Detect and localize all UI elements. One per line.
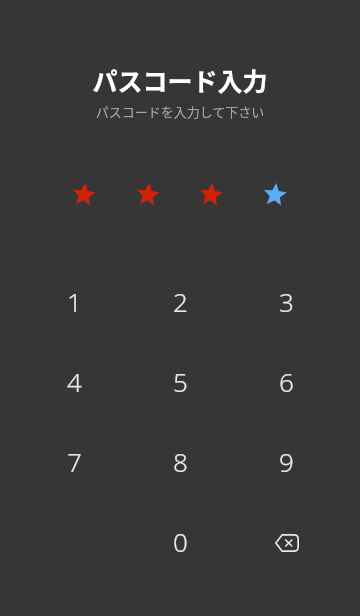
button[interactable]: 4 [21, 341, 127, 421]
button[interactable]: 2 [127, 261, 233, 341]
staticText: 2 [173, 284, 188, 319]
staticText: 6 [279, 364, 294, 399]
button[interactable]: 1 [21, 261, 127, 341]
staticText: 1 [67, 284, 82, 319]
staticText: パスコードを入力して下さい [0, 102, 360, 121]
button[interactable]: Backspace [233, 501, 339, 581]
staticText: 9 [279, 444, 294, 479]
staticText: パスコード入力 [0, 62, 360, 98]
button[interactable]: 3 [233, 261, 339, 341]
staticText: 5 [173, 364, 188, 399]
staticText: 3 [279, 284, 294, 319]
button[interactable]: 6 [233, 341, 339, 421]
staticText: 8 [173, 444, 188, 479]
staticText: 7 [67, 444, 82, 479]
staticText: 4 [67, 364, 82, 399]
button[interactable]: 8 [127, 421, 233, 501]
button[interactable]: 0 [127, 501, 233, 581]
button[interactable]: 9 [233, 421, 339, 501]
button[interactable]: 5 [127, 341, 233, 421]
staticText: 0 [173, 524, 188, 559]
button[interactable]: 7 [21, 421, 127, 501]
